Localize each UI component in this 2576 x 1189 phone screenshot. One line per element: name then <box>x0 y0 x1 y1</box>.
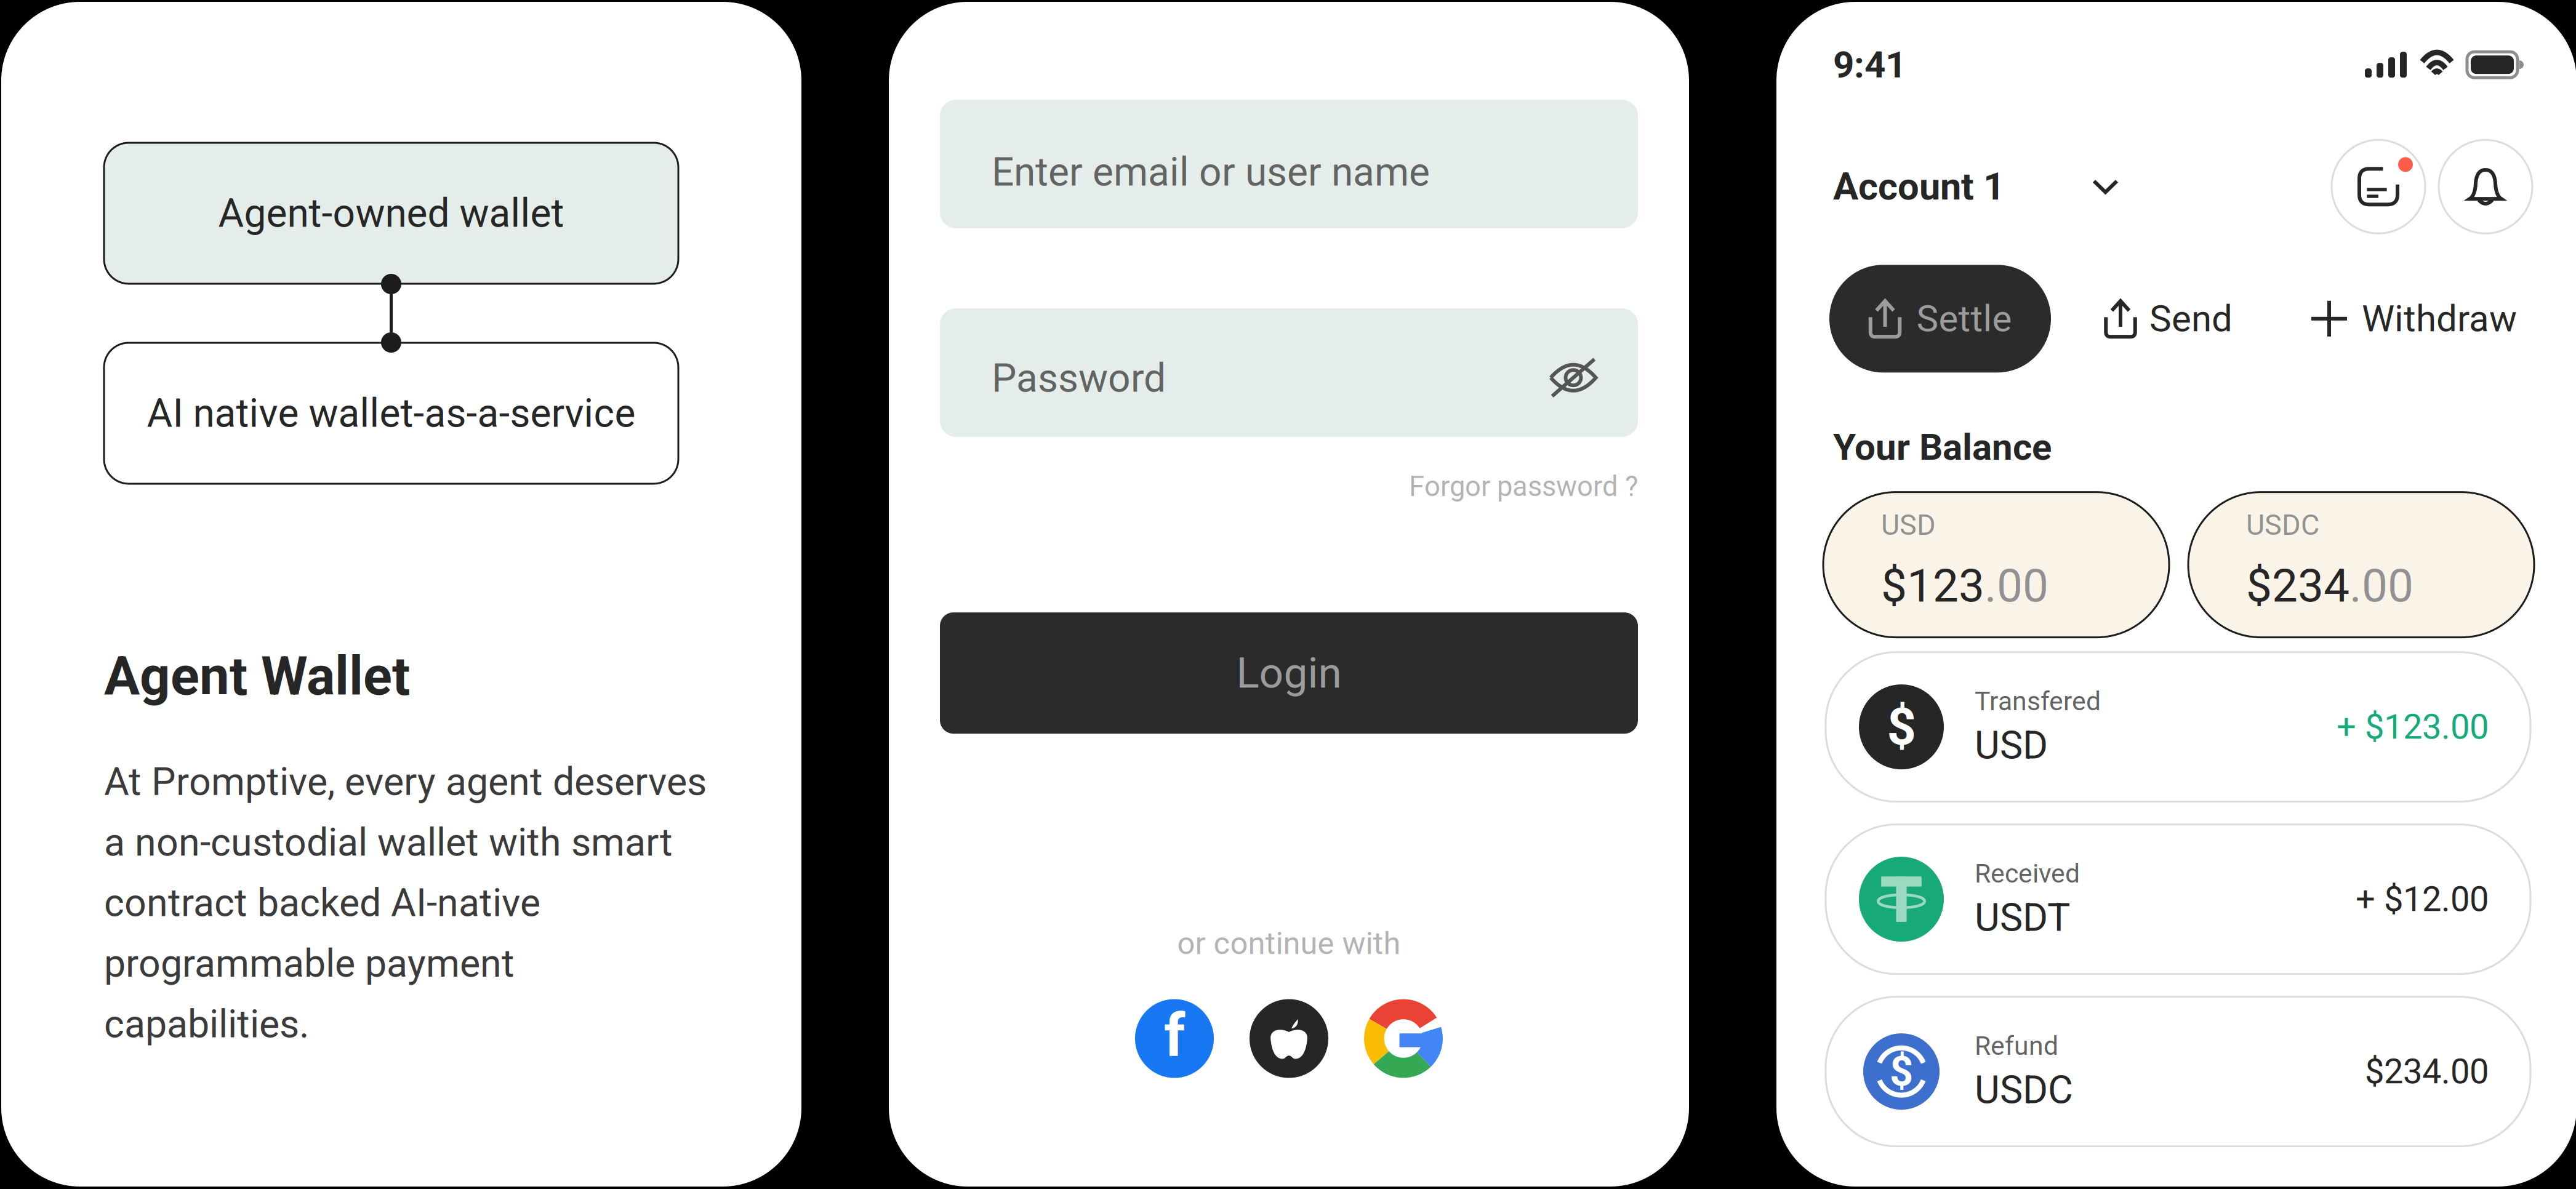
staticText: $234 <box>2246 559 2349 613</box>
staticText: AI native wallet-as-a-service <box>147 390 636 436</box>
button[interactable]: Continue with Apple <box>1250 999 1328 1078</box>
button[interactable]: Messages <box>2332 140 2425 233</box>
button[interactable]: Notifications <box>2439 140 2532 233</box>
staticText: USD <box>1881 508 1936 542</box>
staticText: Received <box>1975 858 2080 889</box>
staticText: Enter email or user name <box>992 149 1430 195</box>
staticText: Transfered <box>1975 686 2101 717</box>
staticText: $ <box>1887 697 1916 757</box>
button[interactable]: USDC <box>2188 492 2534 637</box>
staticText: Settle <box>1916 297 2012 340</box>
staticText: Send <box>2149 297 2233 340</box>
button[interactable]: Withdraw <box>2311 297 2517 340</box>
staticText: USDC <box>2246 508 2319 542</box>
staticText: Your Balance <box>1833 425 2052 469</box>
staticText: USD <box>1975 723 2048 768</box>
staticText: or continue with <box>1177 925 1401 962</box>
staticText: Withdraw <box>2362 297 2517 340</box>
button[interactable]: Forgor password ? <box>1409 470 1638 503</box>
staticText: f <box>1164 1001 1185 1070</box>
button[interactable]: Continue with Facebook <box>1135 999 1214 1078</box>
button[interactable]: $ <box>1826 652 2530 802</box>
staticText: Password <box>992 355 1166 401</box>
button[interactable]: $ <box>1826 997 2530 1146</box>
staticText: 9:41 <box>1833 43 1906 86</box>
staticText: $123 <box>1881 559 1984 613</box>
staticText: + $12.00 <box>2356 879 2489 919</box>
staticText: $234.00 <box>2365 1051 2489 1092</box>
staticText: .00 <box>2349 559 2413 613</box>
staticText: + $123.00 <box>2337 707 2489 747</box>
button[interactable]: Send <box>2104 297 2233 340</box>
staticText: Agent Wallet <box>104 645 410 707</box>
staticText: Login <box>1236 648 1342 698</box>
staticText: Agent-owned wallet <box>218 190 564 236</box>
staticText: $ <box>1890 1048 1913 1096</box>
staticText: At Promptive, every agent deserves a non… <box>104 759 707 1047</box>
button[interactable]: Account 1 <box>1833 165 2117 209</box>
staticText: .00 <box>1984 559 2048 613</box>
button[interactable]: Continue with Google <box>1364 999 1443 1078</box>
staticText: USDC <box>1975 1067 2073 1113</box>
staticText: Account 1 <box>1833 165 2005 209</box>
staticText: USDT <box>1975 895 2070 940</box>
button[interactable]: Received <box>1826 824 2530 974</box>
staticText: Refund <box>1975 1030 2058 1061</box>
button[interactable]: USD <box>1823 492 2169 637</box>
staticText: Forgor password ? <box>1409 470 1638 503</box>
button[interactable]: Settle <box>1829 265 2051 373</box>
button[interactable]: Login <box>940 612 1638 734</box>
